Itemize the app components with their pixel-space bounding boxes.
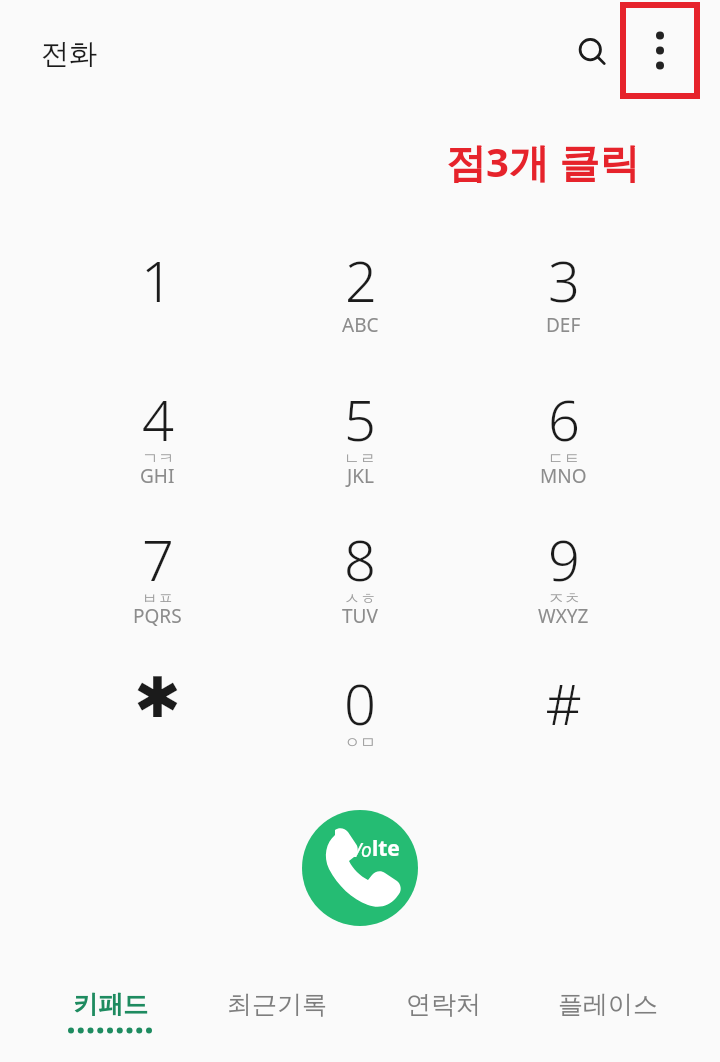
staticText: 6 [548, 381, 580, 457]
staticText: 5 [344, 381, 376, 457]
staticText: 연락처 [406, 989, 481, 1020]
staticText: MNO [540, 463, 587, 489]
staticText: 최근기록 [227, 989, 327, 1020]
staticText: 점3개 클릭 [446, 134, 640, 189]
staticText: 전화 [41, 36, 97, 71]
staticText: Vo [351, 837, 372, 863]
staticText: 8 [344, 521, 376, 597]
button[interactable]: 3 [463, 242, 663, 370]
staticText: PQRS [133, 603, 182, 629]
staticText: # [545, 665, 582, 741]
button[interactable]: 1 [57, 242, 257, 370]
button[interactable]: 2 [260, 242, 460, 370]
button[interactable]: ✱ [57, 665, 257, 793]
staticText: 플레이스 [558, 989, 658, 1020]
button[interactable]: 8 [260, 521, 460, 649]
button[interactable]: 4 [57, 381, 257, 509]
staticText: 0 [344, 665, 376, 741]
button[interactable]: More options [620, 2, 700, 99]
staticText: ㄱㅋ [142, 449, 174, 469]
staticText: DEF [546, 312, 581, 338]
staticText: TUV [342, 603, 378, 629]
button[interactable]: 플레이스 [523, 965, 693, 1050]
button[interactable]: 6 [463, 381, 663, 509]
staticText: JKL [347, 463, 374, 489]
staticText: lte [372, 834, 400, 863]
staticText: ✱ [134, 665, 181, 730]
staticText: ㅇㅁ [344, 733, 376, 753]
staticText: 4 [142, 381, 174, 457]
staticText: 1 [141, 242, 173, 318]
staticText: GHI [140, 463, 175, 489]
staticText: 9 [548, 521, 580, 597]
staticText: ABC [342, 312, 379, 338]
staticText: 3 [548, 242, 580, 318]
button[interactable]: 5 [260, 381, 460, 509]
button[interactable]: 키패드 [25, 965, 195, 1050]
button[interactable]: 연락처 [358, 965, 528, 1050]
button[interactable]: 9 [463, 521, 663, 649]
staticText: ㄷㅌ [548, 449, 580, 469]
button[interactable]: 최근기록 [192, 965, 362, 1050]
staticText: 7 [142, 521, 174, 597]
button[interactable]: 0 [260, 665, 460, 793]
staticText: 키패드 [73, 989, 148, 1020]
button[interactable]: Search [566, 26, 620, 80]
staticText: ㅅㅎ [344, 589, 376, 609]
button[interactable]: # [463, 665, 663, 793]
staticText: 2 [345, 242, 377, 318]
button[interactable]: 7 [57, 521, 257, 649]
staticText: WXYZ [538, 603, 589, 629]
button[interactable]: Call [302, 810, 418, 926]
staticText: ㅈㅊ [548, 589, 580, 609]
staticText: ㄴㄹ [344, 449, 376, 469]
staticText: ㅂㅍ [142, 589, 174, 609]
